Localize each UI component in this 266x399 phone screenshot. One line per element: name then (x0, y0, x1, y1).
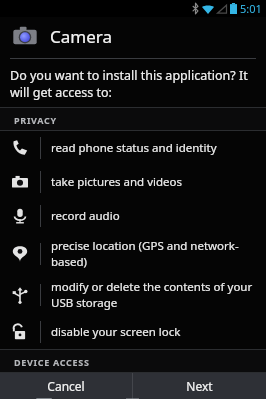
staticText: modify or delete the contents of your US… (51, 279, 258, 310)
button[interactable]: precise location (GPS and network-based) (0, 233, 266, 274)
button[interactable]: read phone status and identity (0, 131, 266, 165)
staticText: read phone status and identity (51, 140, 217, 156)
staticText: precise location (GPS and network-based) (51, 238, 258, 269)
staticText: PRIVACY (14, 114, 57, 126)
staticText: take pictures and videos (51, 174, 182, 190)
staticText: DEVICE ACCESS (14, 356, 90, 368)
staticText: Next (186, 378, 213, 394)
button[interactable]: record audio (0, 199, 266, 233)
button[interactable]: take pictures and videos (0, 165, 266, 199)
button[interactable]: modify or delete the contents of your US… (0, 274, 266, 315)
staticText: record audio (51, 208, 120, 224)
button[interactable]: Next (133, 373, 266, 399)
staticText: Cancel (47, 378, 85, 394)
button[interactable]: disable your screen lock (0, 315, 266, 349)
staticText: Do you want to install this application?… (10, 67, 252, 101)
staticText: disable your screen lock (51, 324, 181, 340)
staticText: Camera (50, 25, 112, 48)
staticText: 5:01 (240, 1, 262, 16)
button[interactable]: Cancel (0, 373, 132, 399)
